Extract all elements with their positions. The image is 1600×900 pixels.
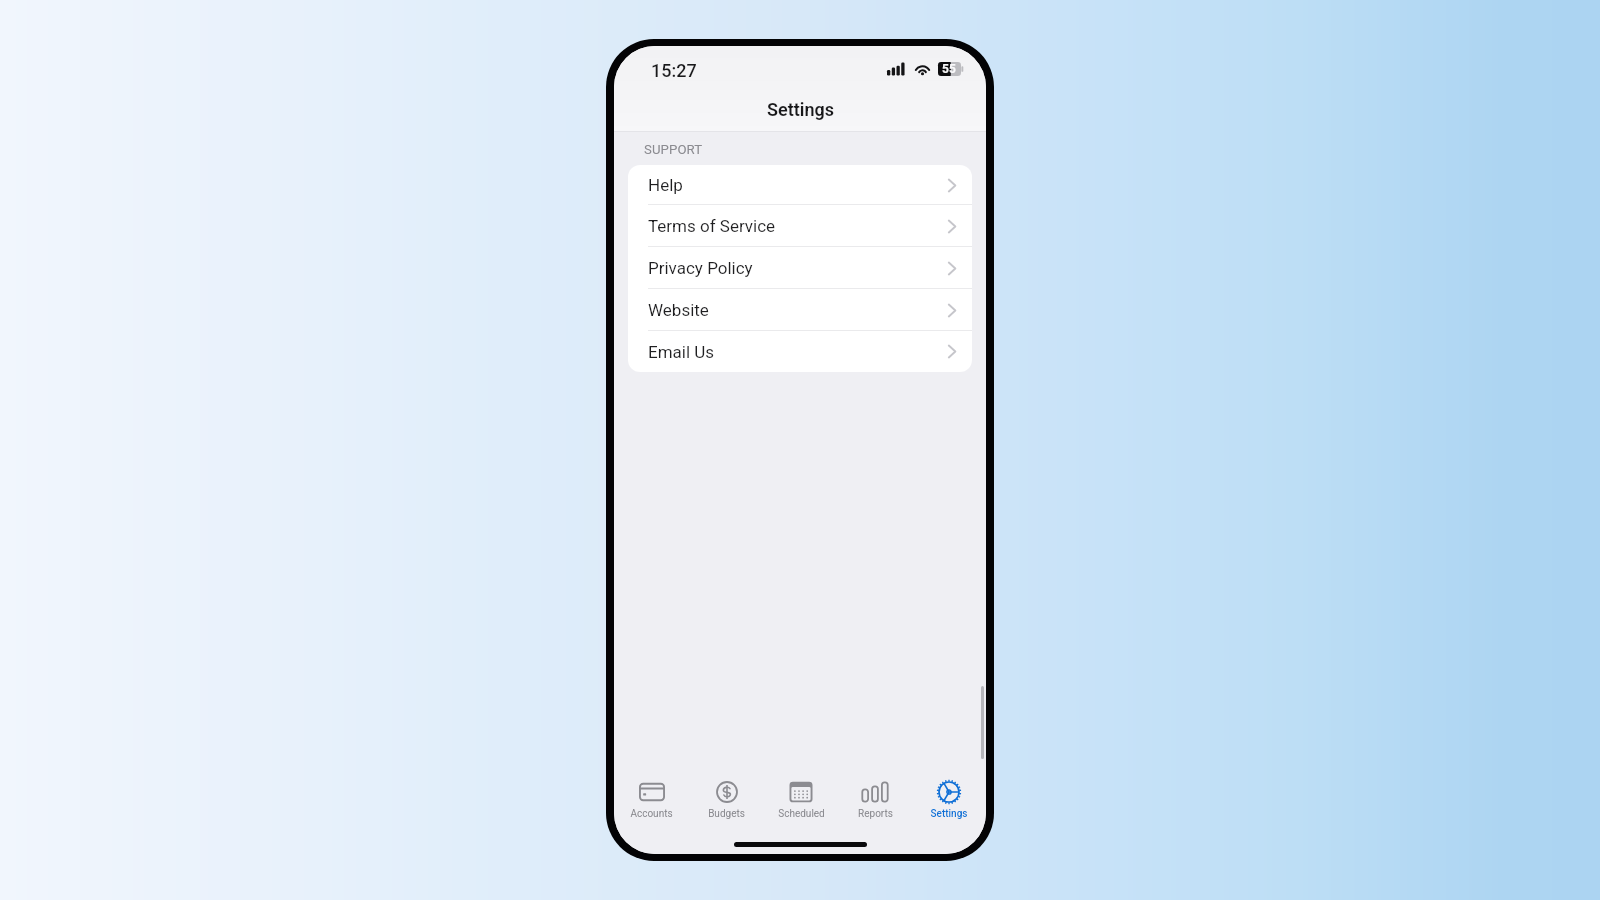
staticText: SUPPORT — [644, 142, 703, 157]
button[interactable]: Help — [628, 165, 972, 205]
button[interactable]: Terms of Service — [628, 205, 972, 247]
staticText: 5 — [942, 62, 949, 76]
staticText: Budgets — [708, 808, 745, 820]
staticText: Reports — [858, 808, 893, 820]
staticText: Website — [648, 300, 709, 320]
staticText: Settings — [930, 808, 968, 820]
button[interactable]: Scheduled — [764, 781, 838, 820]
button[interactable]: Website — [628, 289, 972, 331]
staticText: Terms of Service — [648, 216, 776, 236]
staticText: Accounts — [630, 808, 673, 820]
staticText: Scheduled — [778, 808, 825, 820]
staticText: Privacy Policy — [648, 258, 753, 278]
button[interactable]: Privacy Policy — [628, 247, 972, 289]
staticText: Settings — [767, 99, 834, 120]
staticText: Help — [648, 175, 683, 195]
button[interactable]: Reports — [838, 781, 912, 820]
button[interactable]: Settings — [912, 781, 986, 820]
button[interactable]: Accounts — [614, 781, 689, 820]
staticText: Email Us — [648, 342, 715, 362]
button[interactable]: Budgets — [689, 781, 764, 820]
staticText: 15:27 — [651, 60, 697, 81]
button[interactable]: Email Us — [628, 331, 972, 372]
staticText: 5 — [949, 62, 956, 76]
